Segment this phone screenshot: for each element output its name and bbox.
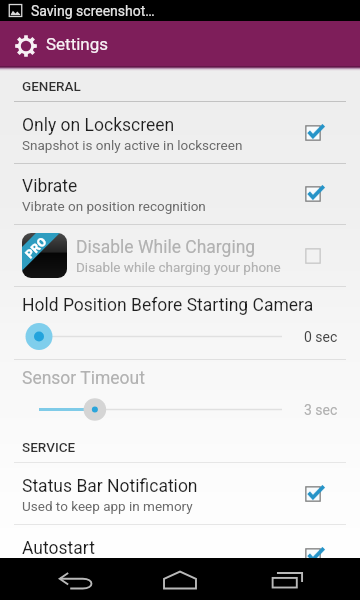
- button[interactable]: PRO: [0, 225, 360, 286]
- button[interactable]: Recent apps: [267, 559, 307, 599]
- button[interactable]: Back: [56, 559, 96, 599]
- button[interactable]: Only on Lockscreen: [0, 102, 360, 163]
- staticText: Saving screenshot…: [31, 3, 155, 19]
- staticText: Status Bar Notification: [22, 476, 198, 497]
- button[interactable]: Home: [160, 559, 200, 599]
- staticText: Vibrate on position recognition: [22, 198, 206, 214]
- staticText: Start service on boot: [22, 560, 147, 576]
- staticText: GENERAL: [22, 78, 81, 94]
- button[interactable]: Hold Position Before Starting Camera: [0, 287, 360, 359]
- staticText: Snapshot is only active in lockscreen: [22, 137, 243, 153]
- staticText: PRO: [23, 235, 49, 261]
- button[interactable]: Status Bar Notification: [0, 463, 360, 524]
- button[interactable]: Sensor Timeout: [0, 360, 360, 432]
- staticText: 3 sec: [304, 402, 338, 418]
- button[interactable]: Autostart: [0, 525, 360, 587]
- button[interactable]: App settings icon: [0, 21, 51, 66]
- staticText: Disable While Charging: [76, 237, 256, 258]
- staticText: Disable while charging your phone: [76, 259, 281, 275]
- staticText: 0 sec: [304, 329, 338, 345]
- staticText: Only on Lockscreen: [22, 115, 175, 136]
- staticText: Settings: [46, 34, 109, 54]
- staticText: Used to keep app in memory: [22, 498, 193, 514]
- staticText: Autostart: [22, 538, 95, 559]
- staticText: Sensor Timeout: [22, 368, 145, 389]
- staticText: Hold Position Before Starting Camera: [22, 295, 314, 316]
- button[interactable]: Vibrate: [0, 164, 360, 224]
- staticText: SERVICE: [22, 439, 76, 455]
- staticText: Vibrate: [22, 176, 78, 197]
